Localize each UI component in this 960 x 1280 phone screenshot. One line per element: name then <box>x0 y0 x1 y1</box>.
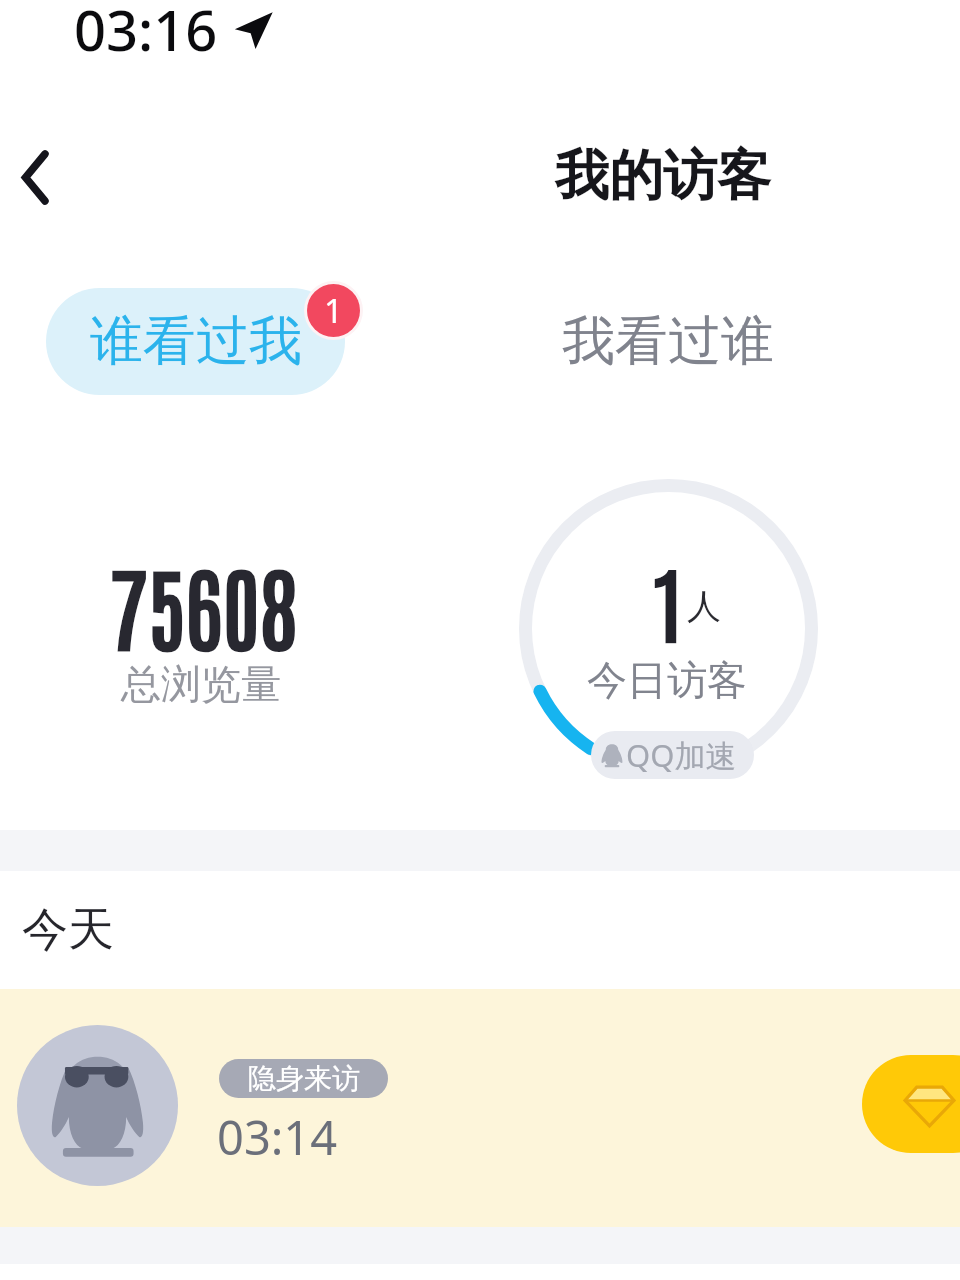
staticText: 今日访客 <box>587 655 747 705</box>
button[interactable]: VIP <box>862 1055 960 1153</box>
button[interactable]: QQ加速 <box>591 731 754 779</box>
button[interactable]: 隐身来访 <box>0 989 960 1227</box>
staticText: 03:16 <box>74 0 218 67</box>
button[interactable]: 我看过谁 <box>540 288 796 395</box>
staticText: 我看过谁 <box>562 308 774 375</box>
staticText: 我的访客 <box>555 142 771 210</box>
button[interactable]: 谁看过我 <box>46 288 345 395</box>
staticText: 1 <box>324 288 343 333</box>
staticText: QQ加速 <box>626 734 737 776</box>
staticText: 总浏览量 <box>121 659 281 709</box>
staticText: 1 <box>651 547 686 653</box>
staticText: 人 <box>687 585 721 628</box>
staticText: 今天 <box>22 901 114 959</box>
staticText: 隐身来访 <box>248 1061 360 1096</box>
staticText: 谁看过我 <box>90 308 302 375</box>
staticText: 03:14 <box>217 1105 338 1169</box>
staticText: 75608 <box>110 546 298 662</box>
button[interactable]: Back <box>0 127 100 227</box>
